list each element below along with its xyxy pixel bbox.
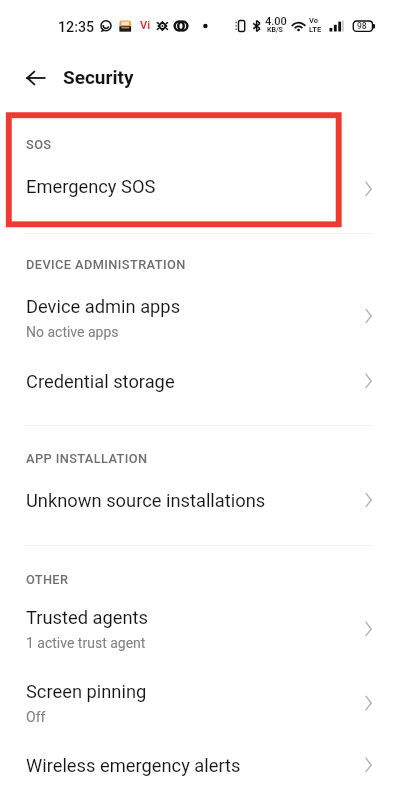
staticText: 12:35	[58, 19, 95, 36]
staticText: APP INSTALLATION	[26, 451, 148, 466]
staticText: LTE	[309, 25, 322, 34]
staticText: Off	[26, 709, 46, 725]
staticText: DEVICE ADMINISTRATION	[26, 257, 186, 272]
button[interactable]: Screen pinning	[0, 667, 400, 739]
staticText: Wireless emergency alerts	[26, 755, 241, 776]
button[interactable]: Device admin apps	[0, 282, 400, 354]
staticText: OTHER	[26, 572, 69, 587]
staticText: No active apps	[26, 324, 119, 340]
button[interactable]: Back	[20, 62, 52, 94]
staticText: KB/S	[267, 26, 283, 34]
button[interactable]: Unknown source installations	[0, 477, 400, 523]
button[interactable]: Wireless emergency alerts	[0, 742, 400, 788]
staticText: Screen pinning	[26, 681, 147, 702]
button[interactable]: Trusted agents	[0, 593, 400, 665]
staticText: Vi	[140, 19, 151, 32]
staticText: Credential storage	[26, 371, 175, 392]
staticText: Security	[63, 66, 134, 88]
staticText: 4.00	[265, 15, 287, 28]
button[interactable]: Emergency SOS	[0, 163, 400, 209]
staticText: 98	[357, 21, 367, 31]
staticText: Trusted agents	[26, 607, 148, 628]
staticText: Emergency SOS	[26, 176, 156, 197]
staticText: Vo	[309, 16, 318, 25]
staticText: 1 active trust agent	[26, 635, 146, 651]
button[interactable]: Credential storage	[0, 358, 400, 404]
staticText: Unknown source installations	[26, 490, 266, 511]
staticText: SOS	[26, 137, 52, 152]
staticText: Device admin apps	[26, 296, 181, 317]
